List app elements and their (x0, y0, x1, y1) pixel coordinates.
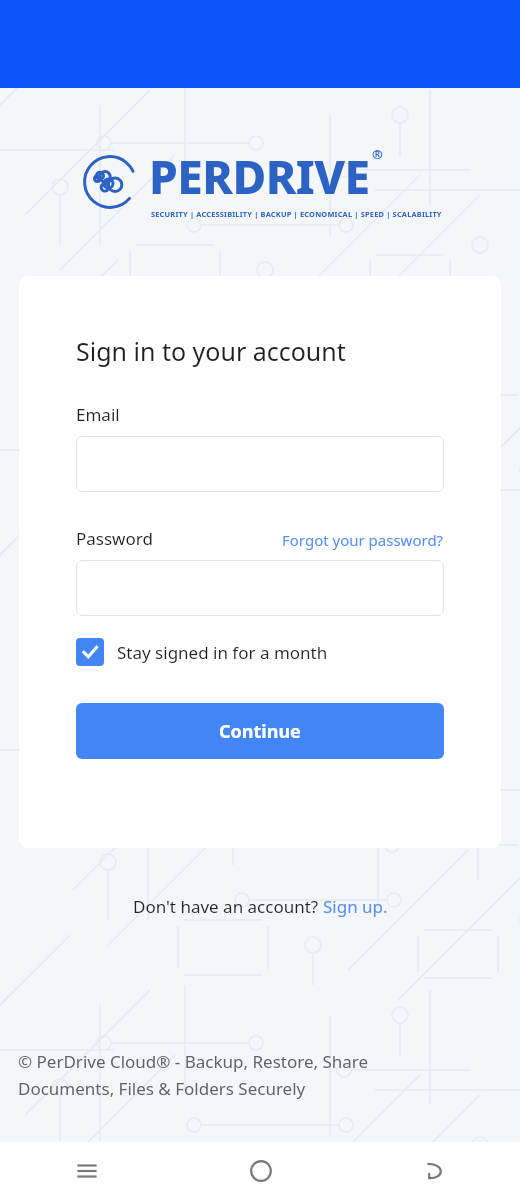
staticText: ® (372, 145, 383, 163)
staticText: Stay signed in for a month (117, 641, 328, 664)
staticText: PERDRIVE (149, 145, 370, 208)
staticText: Forgot your password? (282, 530, 444, 550)
staticText: Sign up. (323, 895, 388, 918)
button[interactable]: Sign up. (323, 895, 388, 918)
button[interactable]: Continue (76, 703, 444, 759)
staticText: © PerDrive Cloud® - Backup, Restore, Sha… (18, 1050, 369, 1100)
button[interactable] (76, 560, 444, 616)
staticText: Don't have an account? (133, 895, 323, 918)
button[interactable] (76, 436, 444, 492)
staticText: Email (76, 403, 120, 426)
staticText: Sign in to your account (76, 334, 346, 368)
button[interactable]: Forgot your password? (282, 530, 444, 550)
staticText: Password (76, 527, 153, 550)
button[interactable]: Home (174, 1142, 347, 1200)
button[interactable]: Stay signed in for a month (76, 638, 328, 666)
staticText: SECURITY | ACCESSIBILITY | BACKUP | ECON… (151, 209, 442, 219)
button[interactable]: Back (347, 1142, 520, 1200)
button[interactable]: Recent apps (0, 1142, 174, 1200)
staticText: Continue (219, 719, 301, 744)
